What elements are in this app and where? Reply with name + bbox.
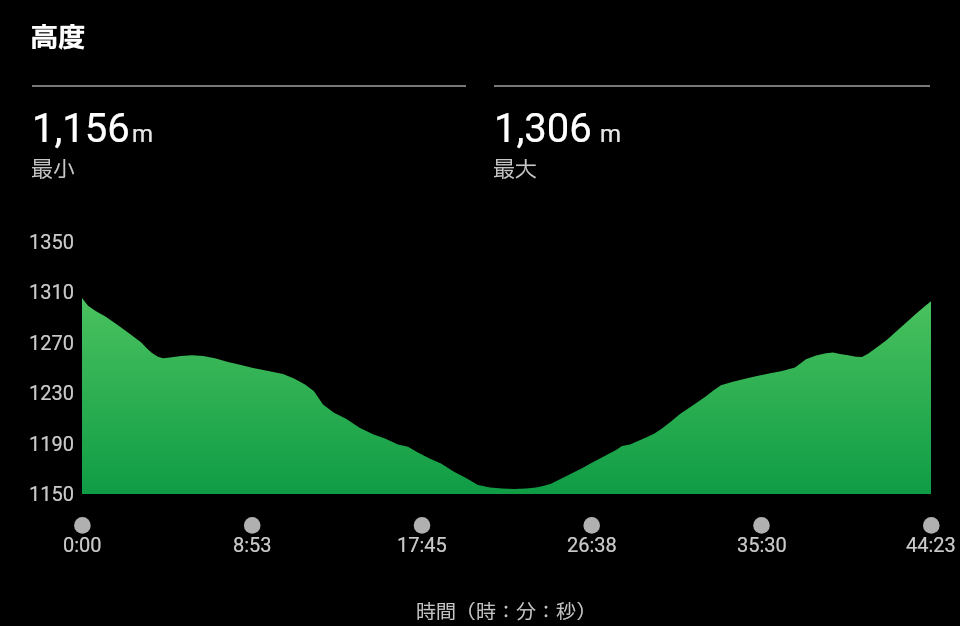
staticText: 時間（時：分：秒） — [416, 598, 596, 624]
staticText: 44:23 — [906, 533, 956, 556]
staticText: 35:30 — [737, 533, 787, 556]
staticText: 26:38 — [567, 533, 617, 556]
staticText: 1310 — [29, 280, 74, 303]
staticText: 1,156 — [32, 105, 130, 152]
staticText: 1150 — [29, 482, 74, 505]
staticText: 高度 — [31, 18, 85, 58]
staticText: 1190 — [29, 432, 74, 455]
staticText: 1,306 — [494, 105, 592, 152]
staticText: 0:00 — [63, 533, 102, 556]
staticText: 1270 — [29, 331, 74, 354]
staticText: m — [132, 120, 154, 148]
staticText: m — [600, 120, 622, 148]
staticText: 最大 — [493, 154, 538, 187]
staticText: 17:45 — [397, 533, 447, 556]
staticText: 1350 — [29, 230, 74, 253]
staticText: 8:53 — [233, 533, 272, 556]
staticText: 最小 — [31, 154, 76, 187]
staticText: 1230 — [29, 381, 74, 404]
